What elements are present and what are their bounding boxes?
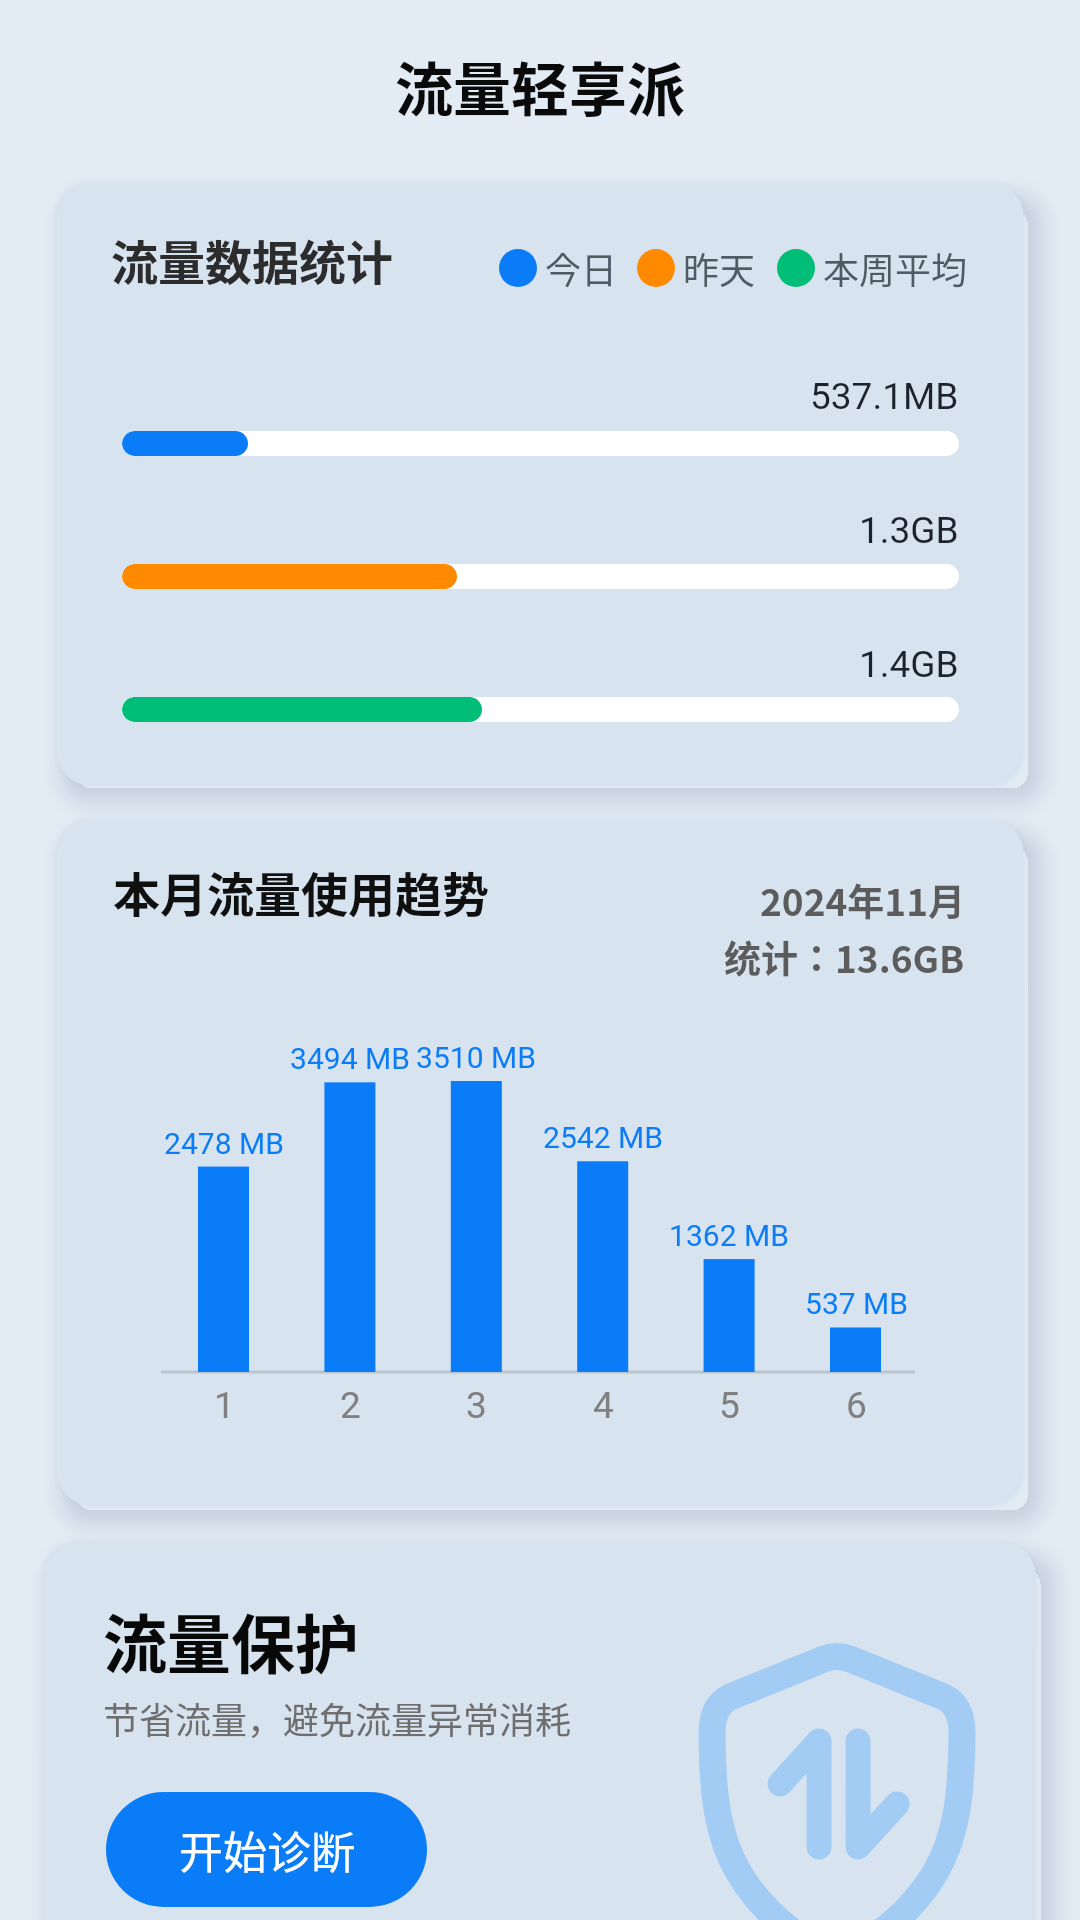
staticText: 3494 MB — [290, 1041, 410, 1076]
staticText: 2 — [340, 1384, 361, 1427]
button[interactable]: 开始诊断 — [106, 1792, 427, 1907]
staticText: 1.3GB — [859, 509, 959, 552]
other: 流量保护 — [700, 1640, 980, 1920]
staticText: 1 — [214, 1384, 235, 1427]
staticText: 3510 MB — [416, 1040, 536, 1075]
staticText: 1362 MB — [669, 1218, 789, 1253]
button[interactable]: 本周平均 — [777, 242, 968, 294]
staticText: 537 MB — [805, 1286, 908, 1321]
staticText: 537.1MB — [810, 375, 959, 418]
staticText: 6 — [846, 1384, 867, 1427]
staticText: 本周平均 — [823, 242, 968, 294]
staticText: 统计：13.6GB — [724, 930, 965, 984]
button[interactable]: 今日 — [499, 242, 618, 294]
staticText: 本月流量使用趋势 — [113, 857, 489, 925]
button[interactable]: 本月流量使用趋势 — [57, 820, 1024, 1506]
staticText: 4 — [593, 1384, 614, 1427]
button[interactable]: 昨天 — [637, 242, 756, 294]
staticText: 2024年11月 — [760, 873, 965, 927]
staticText: 昨天 — [683, 242, 756, 294]
button[interactable]: 流量数据统计 — [57, 183, 1024, 786]
staticText: 流量数据统计 — [111, 225, 393, 293]
staticText: 流量轻享派 — [395, 44, 686, 128]
staticText: 3 — [466, 1384, 487, 1427]
staticText: 2478 MB — [164, 1126, 284, 1161]
staticText: 1.4GB — [859, 643, 959, 686]
staticText: 2542 MB — [543, 1120, 663, 1155]
staticText: 流量保护 — [103, 1594, 359, 1687]
staticText: 节省流量，避免流量异常消耗 — [103, 1692, 572, 1744]
staticText: 今日 — [545, 242, 618, 294]
staticText: 5 — [719, 1384, 740, 1427]
staticText: 开始诊断 — [179, 1818, 355, 1882]
